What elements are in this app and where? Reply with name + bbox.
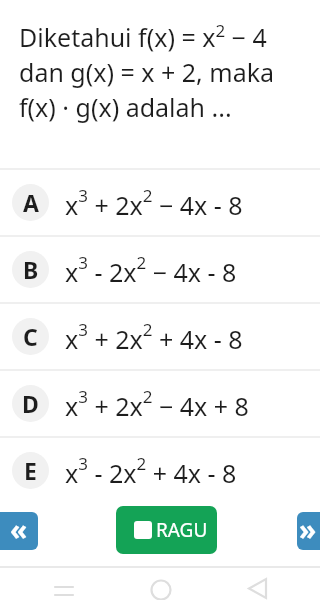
button[interactable]: » xyxy=(297,512,320,550)
button[interactable]: C xyxy=(0,304,320,369)
staticText: « xyxy=(10,512,28,548)
staticText: » xyxy=(299,512,317,548)
button[interactable]: « xyxy=(0,512,38,550)
staticText: E xyxy=(24,455,37,486)
staticText: C xyxy=(23,321,38,352)
button[interactable]: E xyxy=(0,438,320,503)
staticText: x3 - 2x2 + 4x - 8 xyxy=(65,452,237,490)
staticText: RAGU xyxy=(156,517,208,543)
staticText: x3 + 2x2 + 4x - 8 xyxy=(65,318,243,356)
staticText: B xyxy=(23,254,39,285)
button[interactable]: RAGU xyxy=(116,506,217,554)
button[interactable]: D xyxy=(0,371,320,436)
staticText: x3 - 2x2 − 4x - 8 xyxy=(65,251,237,289)
staticText: A xyxy=(23,187,39,218)
staticText: x3 + 2x2 − 4x + 8 xyxy=(65,385,249,423)
button[interactable]: B xyxy=(0,237,320,302)
staticText: x3 + 2x2 − 4x - 8 xyxy=(65,184,243,222)
button[interactable]: A xyxy=(0,170,320,235)
staticText: D xyxy=(22,388,39,419)
staticText: Diketahui f(x) = x2 − 4 dan g(x) = x + 2… xyxy=(19,19,275,125)
